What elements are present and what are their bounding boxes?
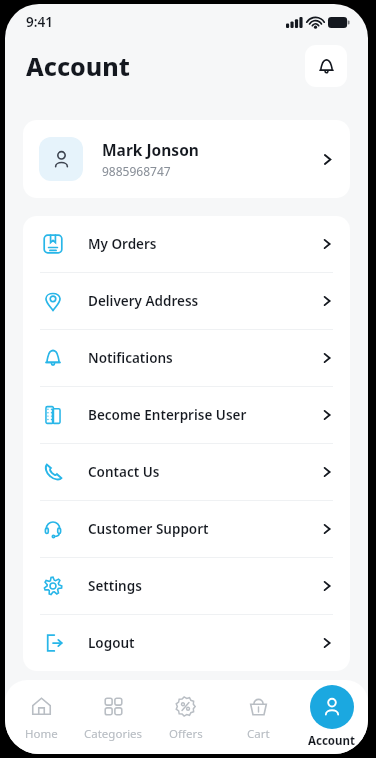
staticText: Account	[308, 733, 355, 749]
staticText: Contact Us	[88, 463, 321, 481]
button[interactable]: Settings	[23, 558, 350, 614]
staticText: Delivery Address	[88, 292, 321, 310]
button[interactable]: Logout	[23, 615, 350, 671]
button[interactable]: My Orders	[23, 216, 350, 272]
button[interactable]: Become Enterprise User	[23, 387, 350, 443]
staticText: Mark Jonson	[102, 139, 199, 160]
button[interactable]: Customer Support	[23, 501, 350, 557]
staticText: Categories	[84, 726, 143, 742]
staticText: Home	[25, 726, 58, 742]
button[interactable]: Account	[295, 680, 368, 754]
button[interactable]: Notifications	[23, 330, 350, 386]
button[interactable]: Notifications	[305, 45, 347, 87]
staticText: Settings	[88, 577, 321, 595]
button[interactable]: Categories	[77, 680, 149, 754]
staticText: Offers	[169, 726, 203, 742]
staticText: My Orders	[88, 235, 321, 253]
staticText: Cart	[247, 726, 270, 742]
button[interactable]: Offers	[149, 680, 222, 754]
staticText: 9885968747	[102, 163, 171, 179]
button[interactable]: Cart	[222, 680, 295, 754]
staticText: Customer Support	[88, 520, 321, 538]
staticText: Logout	[88, 634, 321, 652]
button[interactable]: Contact Us	[23, 444, 350, 500]
staticText: 9:41	[26, 13, 53, 31]
button[interactable]: Home	[5, 680, 77, 754]
button[interactable]: Mark Jonson	[23, 120, 350, 198]
staticText: Become Enterprise User	[88, 406, 321, 424]
staticText: Account	[26, 49, 130, 83]
button[interactable]: Delivery Address	[23, 273, 350, 329]
staticText: Notifications	[88, 349, 321, 367]
